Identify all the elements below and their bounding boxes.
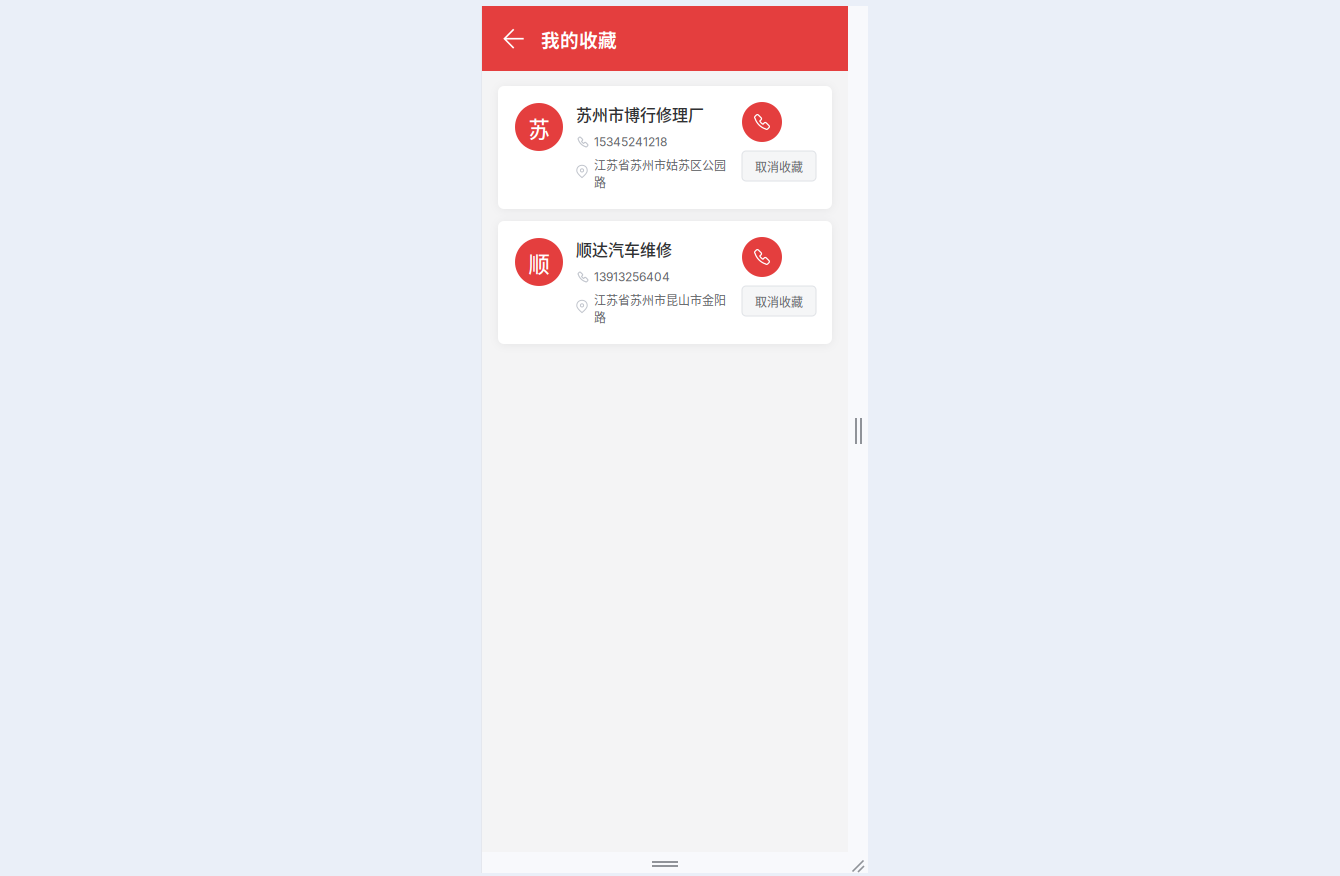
- button[interactable]: 拨打电话: [742, 237, 782, 277]
- button[interactable]: 取消收藏: [742, 151, 816, 181]
- staticText: 苏: [528, 113, 549, 143]
- staticText: 江苏省苏州市昆山市金阳路: [594, 291, 726, 326]
- staticText: 取消收藏: [755, 158, 803, 175]
- button[interactable]: 取消收藏: [742, 286, 816, 316]
- staticText: 我的收藏: [541, 25, 617, 52]
- button[interactable]: 拨打电话: [742, 102, 782, 142]
- staticText: 13913256404: [594, 270, 670, 284]
- staticText: 顺: [528, 248, 549, 278]
- button[interactable]: 返回: [498, 23, 530, 55]
- staticText: 15345241218: [594, 135, 667, 149]
- staticText: 顺达汽车维修: [576, 237, 672, 261]
- staticText: 取消收藏: [755, 293, 803, 310]
- staticText: 苏州市博行修理厂: [576, 102, 704, 126]
- staticText: 江苏省苏州市姑苏区公园路: [594, 156, 726, 191]
